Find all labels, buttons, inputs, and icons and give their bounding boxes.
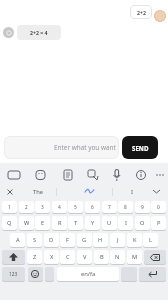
button[interactable]: 2+2 = 4: [17, 25, 61, 40]
button[interactable]: [4, 186, 16, 198]
staticText: J: [117, 236, 119, 244]
button[interactable]: V: [77, 250, 92, 264]
staticText: H: [98, 236, 103, 244]
staticText: R: [58, 219, 62, 227]
staticText: 4: [58, 204, 61, 211]
button[interactable]: [2, 250, 25, 264]
staticText: The: [33, 188, 44, 196]
button[interactable]: [28, 267, 43, 281]
staticText: Enter what you want: [54, 143, 116, 152]
button[interactable]: A: [10, 233, 25, 247]
button[interactable]: O: [135, 216, 150, 230]
button[interactable]: Y: [85, 216, 100, 230]
button[interactable]: 2+2: [130, 5, 152, 19]
button[interactable]: M: [127, 250, 142, 264]
staticText: E: [41, 219, 45, 227]
button[interactable]: 123: [2, 267, 25, 281]
staticText: 3: [41, 204, 44, 211]
button[interactable]: Z: [27, 250, 42, 264]
button[interactable]: B: [94, 250, 109, 264]
staticText: T: [74, 219, 78, 227]
button[interactable]: I: [120, 186, 144, 198]
button[interactable]: C: [60, 250, 75, 264]
staticText: 6: [91, 204, 94, 211]
staticText: K: [133, 236, 137, 244]
button[interactable]: en/fa: [57, 267, 119, 281]
staticText: G: [82, 236, 87, 244]
button[interactable]: Enter what you want: [4, 136, 119, 159]
button[interactable]: U: [102, 216, 117, 230]
staticText: N: [115, 253, 120, 261]
staticText: I: [125, 219, 127, 227]
staticText: Z: [33, 253, 37, 261]
button[interactable]: 9: [135, 201, 150, 213]
staticText: SEND: [132, 144, 149, 152]
button[interactable]: [139, 267, 166, 281]
staticText: M: [132, 253, 138, 261]
staticText: Q: [7, 219, 12, 227]
staticText: X: [50, 253, 54, 261]
staticText: 9: [141, 204, 144, 211]
button[interactable]: 3: [35, 201, 50, 213]
staticText: V: [83, 253, 87, 261]
button[interactable]: J: [110, 233, 125, 247]
button[interactable]: W: [19, 216, 34, 230]
button[interactable]: E: [35, 216, 50, 230]
staticText: A: [16, 236, 20, 244]
staticText: P: [157, 219, 161, 227]
staticText: C: [66, 253, 70, 261]
staticText: en/fa: [81, 270, 96, 278]
staticText: 123: [9, 271, 18, 278]
staticText: 2: [25, 204, 28, 211]
button[interactable]: 2: [19, 201, 34, 213]
staticText: U: [107, 219, 112, 227]
button[interactable]: R: [52, 216, 67, 230]
staticText: 1: [8, 204, 11, 211]
staticText: 2+2: [137, 9, 146, 16]
button[interactable]: X: [44, 250, 59, 264]
button[interactable]: 1: [2, 201, 17, 213]
button[interactable]: 4: [52, 201, 67, 213]
staticText: Y: [91, 219, 95, 227]
staticText: W: [24, 219, 30, 227]
button[interactable]: K: [127, 233, 142, 247]
staticText: S: [33, 236, 37, 244]
staticText: 2+2 = 4: [30, 29, 48, 36]
button[interactable]: [144, 250, 166, 264]
staticText: 7: [108, 204, 111, 211]
staticText: I: [131, 188, 133, 196]
button[interactable]: F: [60, 233, 75, 247]
button[interactable]: P: [151, 216, 166, 230]
staticText: 0: [157, 204, 160, 211]
button[interactable]: SEND: [122, 136, 158, 159]
staticText: O: [140, 219, 145, 227]
button[interactable]: The: [20, 186, 56, 198]
button[interactable]: I: [118, 216, 133, 230]
button[interactable]: S: [27, 233, 42, 247]
button[interactable]: 0: [151, 201, 166, 213]
button[interactable]: 8: [118, 201, 133, 213]
button[interactable]: 5: [68, 201, 83, 213]
staticText: 5: [74, 204, 77, 211]
button[interactable]: L: [143, 233, 158, 247]
button[interactable]: 6: [85, 201, 100, 213]
staticText: L: [149, 236, 152, 244]
button[interactable]: G: [77, 233, 92, 247]
staticText: 8: [124, 204, 127, 211]
button[interactable]: H: [93, 233, 108, 247]
button[interactable]: N: [110, 250, 125, 264]
staticText: F: [66, 236, 69, 244]
staticText: D: [49, 236, 54, 244]
button[interactable]: D: [44, 233, 59, 247]
button[interactable]: T: [68, 216, 83, 230]
button[interactable]: Q: [2, 216, 17, 230]
staticText: B: [100, 253, 104, 261]
button[interactable]: 7: [102, 201, 117, 213]
